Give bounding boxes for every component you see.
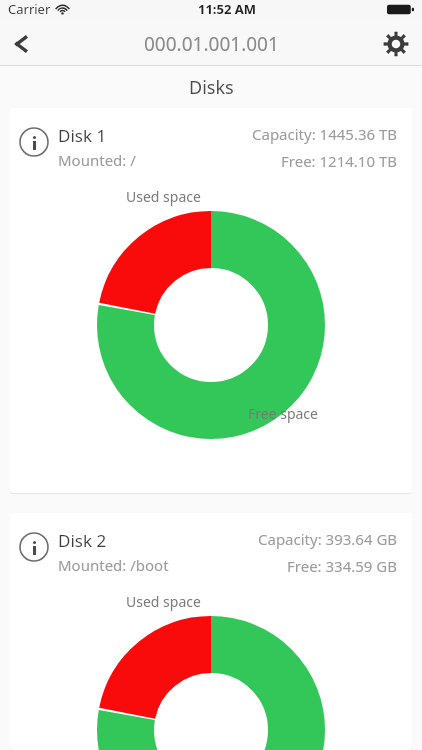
staticText: Capacity: 393.64 GB [258, 529, 398, 549]
button[interactable]: Settings [370, 22, 422, 66]
staticText: Disks [189, 75, 234, 100]
staticText: Capacity: 1445.36 TB [252, 124, 398, 144]
staticText: Free: 1214.10 TB [281, 151, 398, 171]
staticText: Used space [126, 187, 201, 206]
staticText: Disk 2 [58, 529, 107, 552]
button[interactable]: Back [0, 22, 46, 66]
staticText: Used space [126, 592, 201, 611]
staticText: Carrier [8, 0, 51, 18]
button[interactable]: Disk 2 [10, 513, 412, 750]
staticText: Disk 1 [58, 124, 107, 147]
staticText: 000.01.001.001 [144, 31, 279, 57]
staticText: Mounted: / [58, 150, 136, 170]
staticText: Free: 334.59 GB [287, 556, 398, 576]
button[interactable]: Disk 1 [10, 108, 412, 493]
staticText: Free space [248, 404, 318, 423]
staticText: 11:52 AM [198, 0, 257, 18]
staticText: Mounted: /boot [58, 555, 169, 575]
